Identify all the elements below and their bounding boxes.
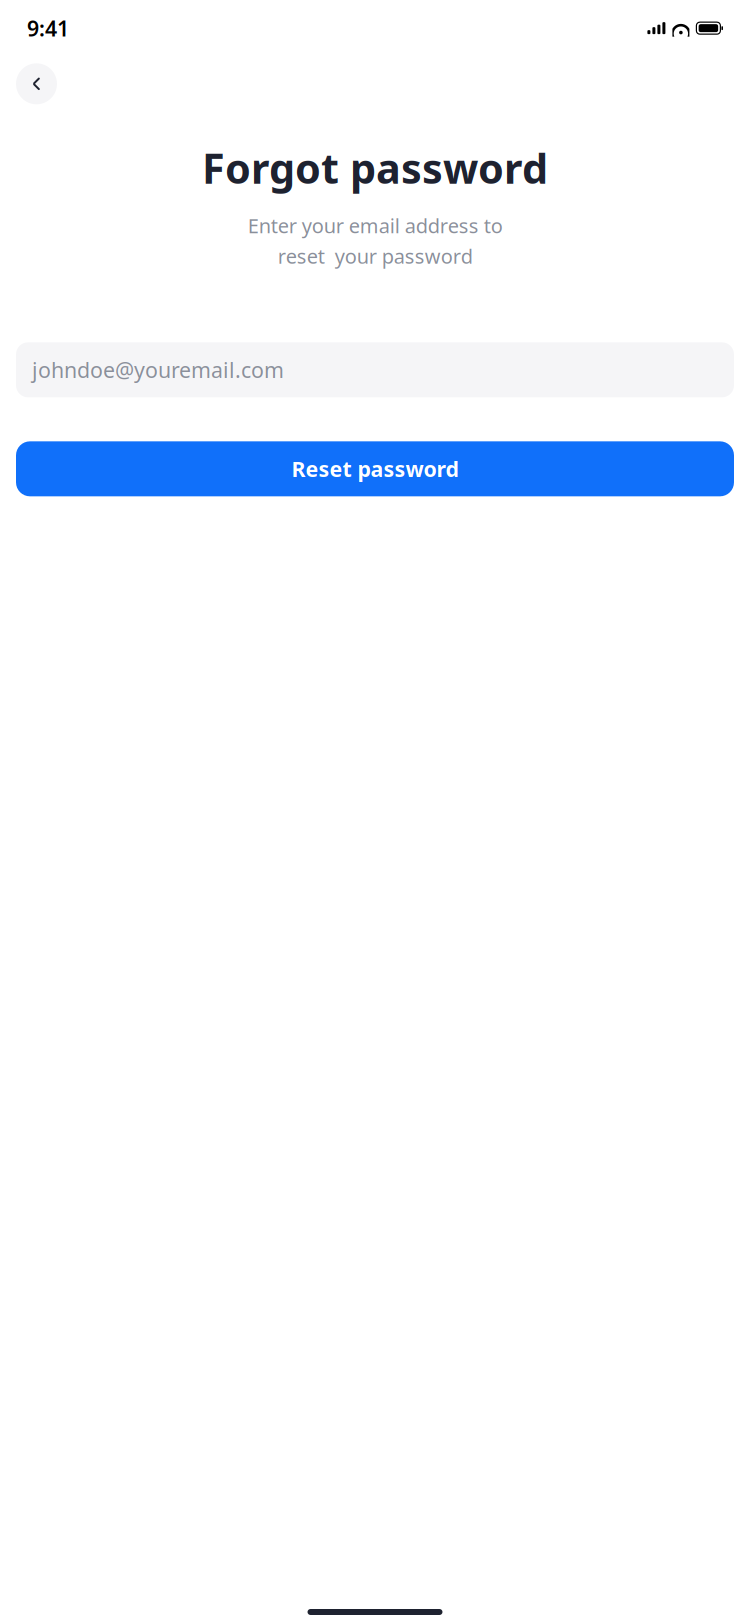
- staticText: johndoe@youremail.com: [32, 356, 284, 384]
- button[interactable]: johndoe@youremail.com: [16, 342, 734, 397]
- staticText: Forgot password: [202, 140, 548, 195]
- button[interactable]: Back: [16, 63, 57, 104]
- staticText: 9:41: [27, 14, 69, 42]
- staticText: Reset password: [291, 455, 458, 483]
- staticText: Enter your email address to reset your p…: [247, 212, 502, 269]
- button[interactable]: Reset password: [16, 441, 734, 496]
